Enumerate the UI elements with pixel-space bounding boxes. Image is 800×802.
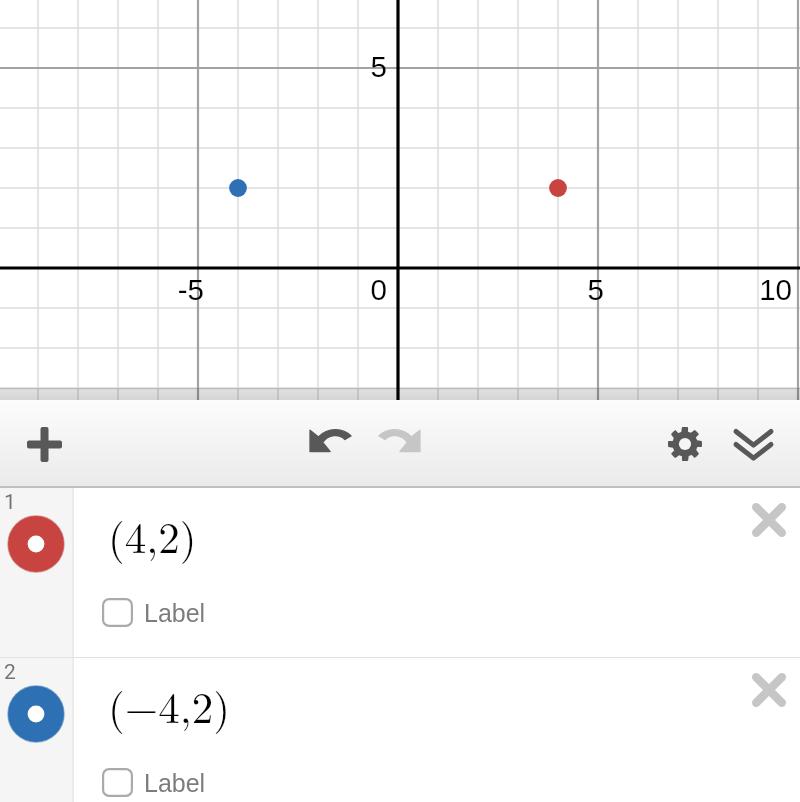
staticText: 10 <box>702 273 792 306</box>
button[interactable]: Delete expression <box>739 490 799 550</box>
staticText: 2 <box>4 660 16 685</box>
button[interactable]: 2 <box>0 658 800 802</box>
staticText: -5 <box>114 273 204 306</box>
staticText: 5 <box>297 50 387 83</box>
staticText: 1 <box>4 490 16 515</box>
button[interactable]: Add item <box>14 414 74 474</box>
button[interactable]: Label <box>102 598 206 627</box>
button[interactable]: Redo <box>370 409 430 469</box>
button[interactable]: Settings <box>655 414 715 474</box>
button[interactable]: Undo <box>300 409 360 469</box>
button[interactable]: Label <box>102 768 206 797</box>
staticText: (4,2) <box>108 505 197 566</box>
staticText: (−4,2) <box>108 675 230 736</box>
button[interactable]: 1 <box>0 488 800 657</box>
staticText: Label <box>144 599 206 627</box>
button[interactable]: Toggle plot <box>7 685 65 743</box>
staticText: Label <box>144 769 206 797</box>
button[interactable]: Collapse keypad <box>723 414 783 474</box>
button[interactable]: Delete expression <box>739 660 799 720</box>
staticText: 5 <box>514 273 604 306</box>
staticText: 0 <box>297 273 387 306</box>
button[interactable]: Toggle plot <box>7 515 65 573</box>
